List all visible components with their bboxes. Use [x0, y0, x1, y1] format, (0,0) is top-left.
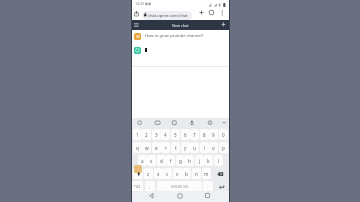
- button[interactable]: 1: [133, 129, 142, 140]
- button[interactable]: b: [182, 168, 191, 179]
- staticText: z: [147, 171, 150, 177]
- button[interactable]: r: [161, 142, 170, 153]
- button[interactable]: p: [219, 142, 228, 153]
- staticText: .: [207, 184, 209, 190]
- button[interactable]: [134, 165, 142, 173]
- staticText: 0: [222, 132, 225, 138]
- button[interactable]: ,: [145, 181, 155, 192]
- staticText: d: [160, 158, 163, 164]
- staticText: a: [141, 158, 144, 164]
- staticText: y: [184, 145, 187, 151]
- staticText: k: [207, 158, 210, 164]
- staticText: 2: [145, 132, 148, 138]
- button[interactable]: 2: [142, 129, 151, 140]
- button[interactable]: [134, 11, 139, 16]
- button[interactable]: 0: [219, 129, 228, 140]
- button[interactable]: h: [185, 155, 194, 166]
- staticText: v: [176, 171, 179, 177]
- staticText: x: [157, 171, 160, 177]
- staticText: b: [185, 171, 188, 177]
- button[interactable]: 4: [161, 129, 170, 140]
- button[interactable]: [205, 193, 210, 198]
- button[interactable]: u: [190, 142, 199, 153]
- button[interactable]: 3: [152, 129, 161, 140]
- staticText: ,: [149, 184, 151, 190]
- button[interactable]: c: [163, 168, 172, 179]
- button[interactable]: t: [171, 142, 180, 153]
- button[interactable]: [214, 181, 228, 192]
- button[interactable]: [221, 10, 224, 16]
- staticText: t: [175, 145, 177, 151]
- button[interactable]: x: [154, 168, 163, 179]
- staticText: w: [145, 145, 149, 151]
- button[interactable]: o: [209, 142, 218, 153]
- button[interactable]: q: [133, 142, 142, 153]
- button[interactable]: n: [192, 168, 201, 179]
- button[interactable]: v: [173, 168, 182, 179]
- staticText: 8: [203, 132, 206, 138]
- button[interactable]: z: [144, 168, 153, 179]
- staticText: m: [204, 171, 209, 177]
- staticText: How to grow youtube channel?: [145, 33, 204, 38]
- button[interactable]: 5: [171, 129, 180, 140]
- button[interactable]: f: [166, 155, 175, 166]
- staticText: r: [165, 145, 167, 151]
- button[interactable]: ENGLISH (UK): [157, 181, 202, 192]
- staticText: OK: [136, 35, 140, 39]
- button[interactable]: [177, 193, 183, 199]
- staticText: u: [193, 145, 196, 151]
- staticText: ?123: [134, 185, 141, 189]
- button[interactable]: w: [142, 142, 151, 153]
- button[interactable]: s: [147, 155, 156, 166]
- staticText: l: [218, 158, 220, 164]
- button[interactable]: 6: [181, 129, 190, 140]
- button[interactable]: [199, 10, 204, 15]
- staticText: p: [222, 145, 225, 151]
- button[interactable]: 8: [200, 129, 209, 140]
- button[interactable]: [134, 23, 139, 27]
- staticText: 3: [155, 132, 158, 138]
- button[interactable]: m: [202, 168, 211, 179]
- staticText: ENGLISH (UK): [171, 185, 189, 189]
- staticText: 9: [212, 132, 215, 138]
- button[interactable]: [149, 193, 154, 199]
- button[interactable]: [221, 22, 226, 27]
- staticText: e: [155, 145, 158, 151]
- button[interactable]: ?123: [132, 181, 143, 192]
- staticText: n: [195, 171, 198, 177]
- staticText: g: [179, 158, 182, 164]
- staticText: 1: [136, 132, 139, 138]
- button[interactable]: j: [195, 155, 204, 166]
- staticText: 7: [193, 132, 196, 138]
- button[interactable]: [133, 168, 143, 179]
- button[interactable]: a: [138, 155, 147, 166]
- button[interactable]: .: [203, 181, 213, 192]
- staticText: o: [212, 145, 215, 151]
- staticText: 4: [164, 132, 167, 138]
- staticText: i: [204, 145, 206, 151]
- button[interactable]: g: [176, 155, 185, 166]
- staticText: q: [136, 145, 139, 151]
- button[interactable]: l: [214, 155, 223, 166]
- button[interactable]: i: [200, 142, 209, 153]
- staticText: h: [188, 158, 191, 164]
- staticText: New chat: [172, 23, 189, 28]
- staticText: 14:25: [135, 1, 145, 6]
- button[interactable]: chat.opera.com/chat: [142, 11, 192, 20]
- staticText: 5: [174, 132, 177, 138]
- button[interactable]: 7: [190, 129, 199, 140]
- button[interactable]: [209, 10, 214, 15]
- staticText: s: [150, 158, 153, 164]
- staticText: j: [199, 158, 201, 164]
- button[interactable]: k: [204, 155, 213, 166]
- staticText: chat.opera.com/chat: [148, 13, 188, 19]
- button[interactable]: d: [157, 155, 166, 166]
- staticText: f: [170, 158, 172, 164]
- staticText: 6: [184, 132, 187, 138]
- button[interactable]: e: [152, 142, 161, 153]
- button[interactable]: [217, 172, 224, 176]
- staticText: c: [166, 171, 169, 177]
- button[interactable]: 9: [209, 129, 218, 140]
- button[interactable]: y: [181, 142, 190, 153]
